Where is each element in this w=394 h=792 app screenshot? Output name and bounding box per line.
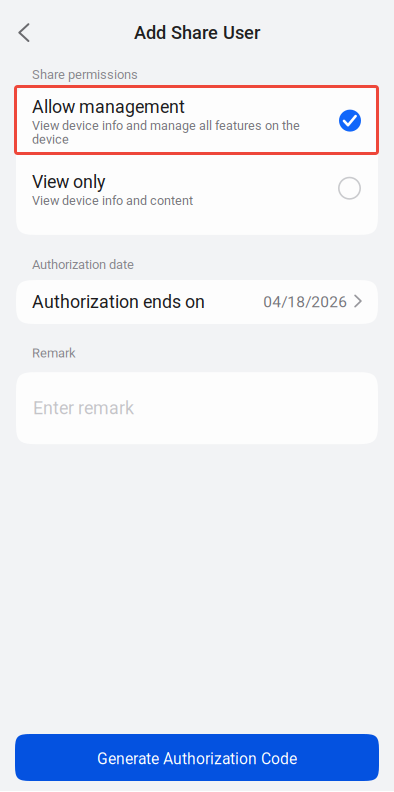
button[interactable]: View only [16, 160, 378, 235]
staticText: Authorization ends on [32, 292, 205, 312]
button[interactable]: Enter remark [16, 372, 378, 444]
button[interactable]: Back [2, 12, 46, 52]
button[interactable]: Allow management [16, 85, 378, 160]
button[interactable]: Generate Authorization Code [15, 734, 379, 781]
staticText: View device info and manage all features… [32, 118, 300, 147]
staticText: Enter remark [33, 398, 134, 419]
staticText: Authorization date [32, 257, 134, 272]
staticText: Share permissions [32, 67, 138, 82]
staticText: 04/18/2026 [263, 293, 347, 311]
button[interactable]: Authorization ends on [16, 280, 378, 324]
staticText: Allow management [32, 96, 185, 117]
staticText: View device info and content [32, 193, 193, 208]
staticText: Remark [32, 346, 76, 361]
staticText: Generate Authorization Code [97, 750, 297, 768]
staticText: View only [32, 171, 105, 192]
staticText: Add Share User [134, 22, 260, 43]
